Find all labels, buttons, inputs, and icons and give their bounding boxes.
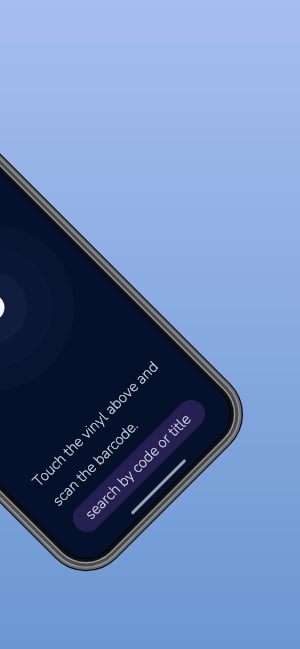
button[interactable]: search by code or title (0, 0, 300, 649)
